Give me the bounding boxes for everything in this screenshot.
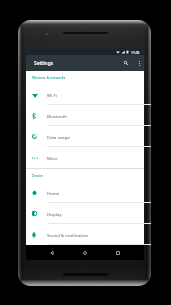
staticText: Settings [34, 60, 54, 67]
button[interactable]: Data usage [26, 126, 144, 147]
staticText: Sound & notification [47, 232, 89, 238]
button[interactable]: Wi-Fi [26, 84, 144, 105]
button[interactable]: Display [26, 203, 144, 224]
staticText: Bluetooth [47, 113, 67, 119]
staticText: Wireless & networks [32, 75, 66, 80]
button[interactable]: Home [26, 182, 144, 203]
button[interactable]: Sound & notification [26, 224, 144, 245]
button[interactable]: More options [132, 56, 146, 70]
staticText: Data usage [47, 134, 70, 140]
button[interactable]: More [26, 147, 144, 168]
button[interactable]: Bluetooth [26, 105, 144, 126]
staticText: 11:35 [131, 50, 140, 54]
button[interactable]: Home [75, 245, 95, 260]
button[interactable]: Back [42, 245, 62, 260]
staticText: Wi-Fi [47, 92, 57, 98]
button[interactable]: Search [119, 56, 133, 70]
staticText: Device [32, 173, 43, 178]
staticText: More [47, 155, 58, 161]
staticText: Home [47, 190, 60, 196]
button[interactable]: Recent apps [108, 245, 128, 260]
staticText: Display [47, 211, 62, 217]
